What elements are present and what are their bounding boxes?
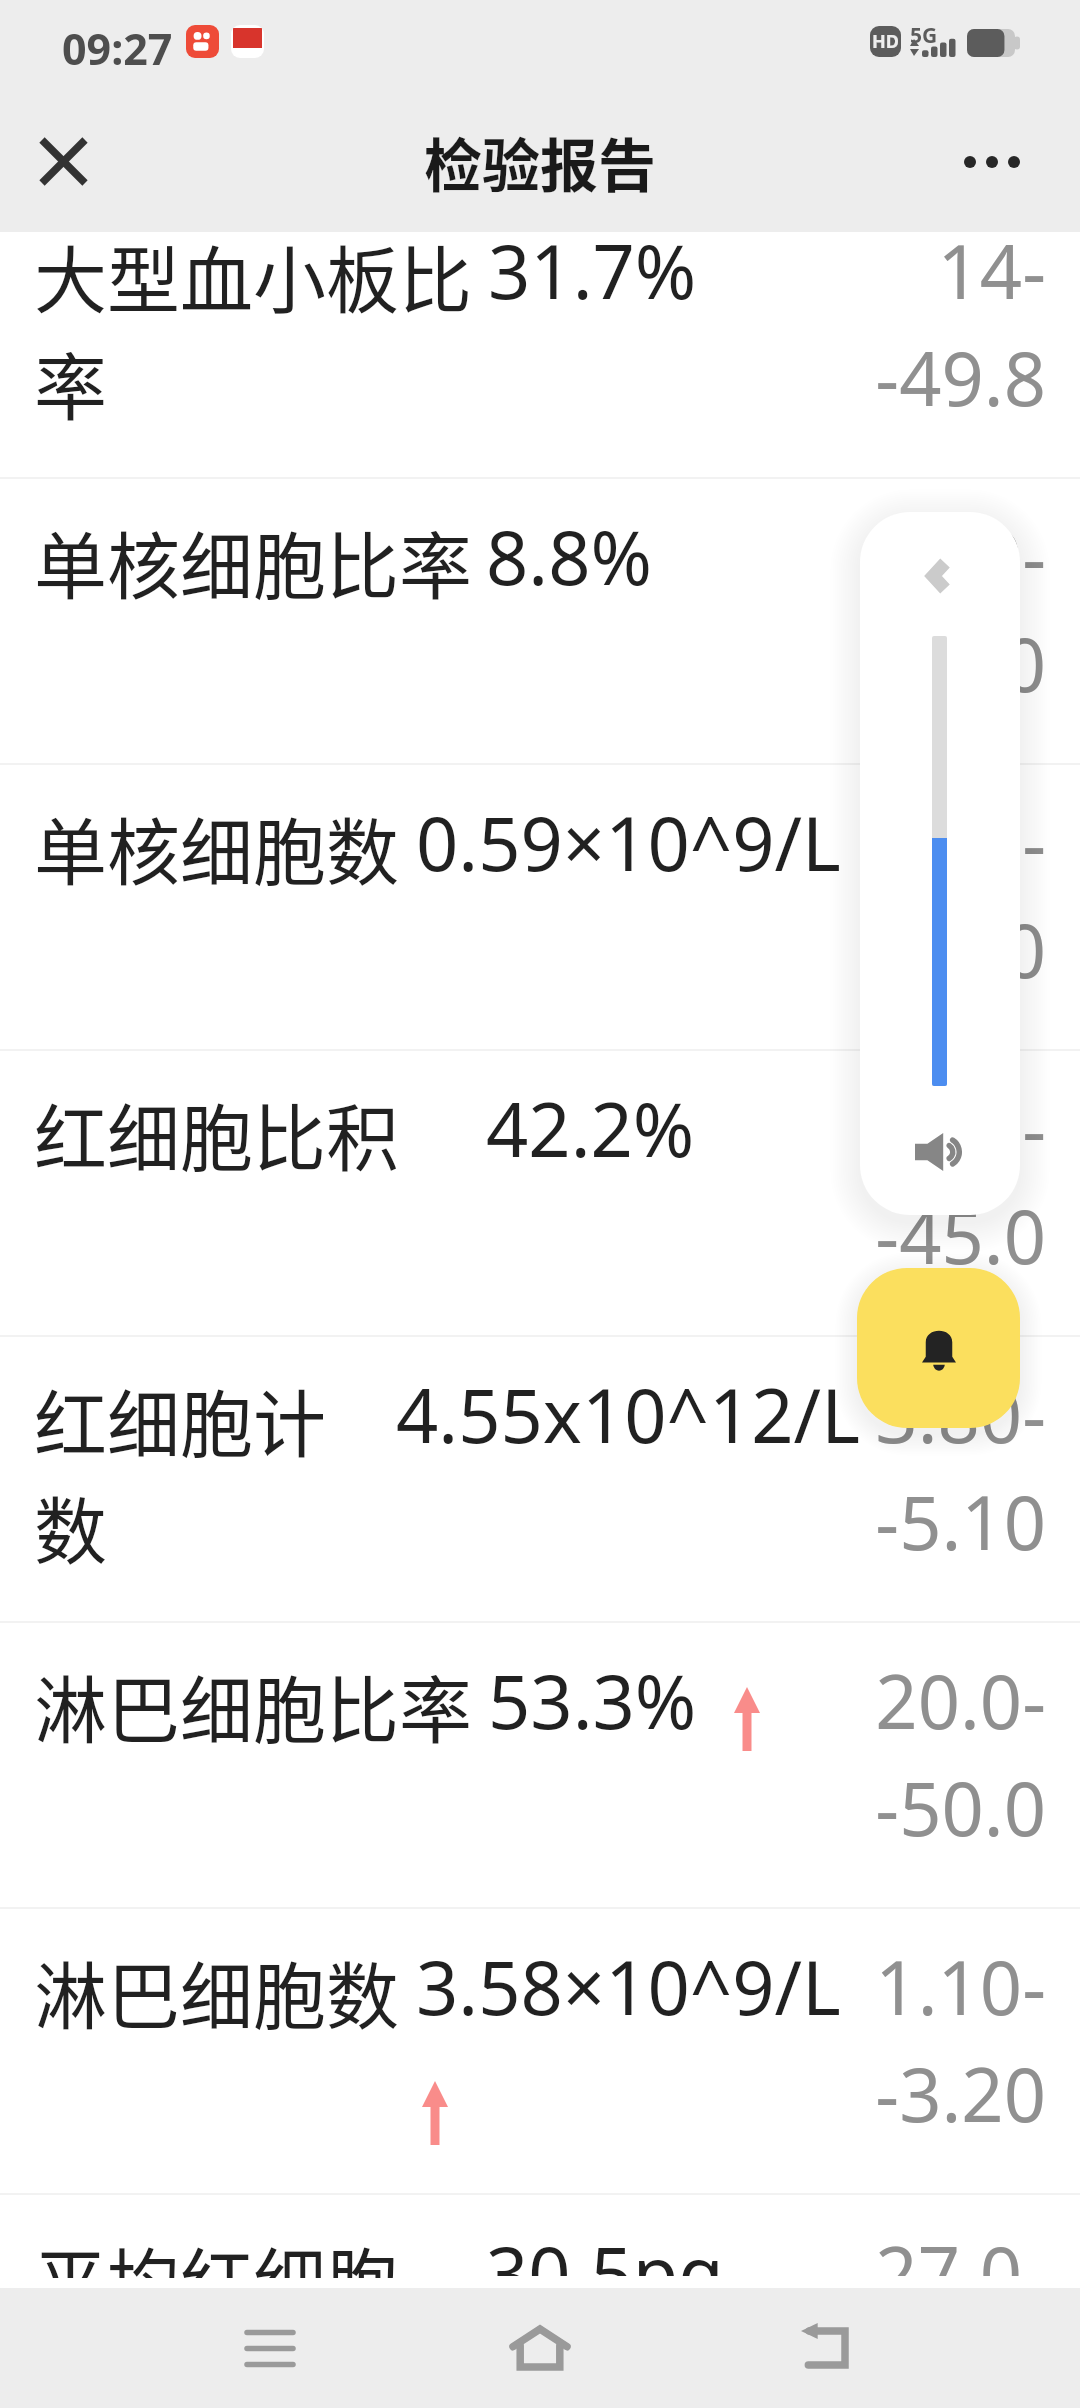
staticText: 30.5pg xyxy=(486,2222,724,2276)
staticText: 0.59×10^9/L xyxy=(416,792,841,893)
staticText: 35.0- -45.0 xyxy=(846,1078,1046,1286)
button[interactable]: Close xyxy=(8,106,118,216)
button[interactable]: 大型血小板比率 xyxy=(0,232,1080,477)
staticText: 09:27 xyxy=(62,19,173,78)
button[interactable]: 淋巴细胞比率 xyxy=(0,1623,1080,1907)
button[interactable]: 平均红细胞血红蛋白量 xyxy=(0,2195,1080,2249)
staticText: 4.55x10^12/L xyxy=(396,1364,860,1465)
button[interactable]: More options xyxy=(932,102,1052,222)
staticText: 31.7% xyxy=(488,232,697,321)
staticText: 8.8% xyxy=(486,506,652,607)
staticText: 3.0- -10.0 xyxy=(846,506,1046,714)
staticText: 检验报告 xyxy=(424,120,657,204)
button[interactable]: Recents xyxy=(190,2288,350,2408)
staticText: 3.80- -5.10 xyxy=(846,1364,1046,1572)
staticText: 53.3% xyxy=(488,1650,697,1751)
staticText: 淋巴细胞数 xyxy=(34,1938,494,2044)
staticText: 0.10- -0.60 xyxy=(846,792,1046,1000)
staticText: 红细胞计数 xyxy=(34,1366,364,1579)
button[interactable]: 单核细胞数 xyxy=(0,765,1080,1049)
button[interactable]: Back xyxy=(745,2288,905,2408)
staticText: 红细胞比积 xyxy=(34,1080,494,1186)
button[interactable]: Notifications xyxy=(857,1268,1020,1428)
staticText: 单核细胞数 xyxy=(34,794,494,900)
staticText: 5G xyxy=(910,21,938,50)
staticText: 27.0- -34.0 xyxy=(846,2222,1046,2276)
staticText: 42.2% xyxy=(486,1078,695,1179)
staticText: 单核细胞比率 xyxy=(34,508,494,614)
staticText: HD xyxy=(872,29,899,54)
staticText: 14- -49.8 xyxy=(846,232,1046,428)
button[interactable]: 红细胞计数 xyxy=(0,1337,1080,1621)
staticText: 淋巴细胞比率 xyxy=(34,1652,494,1758)
staticText: 3.58×10^9/L xyxy=(416,1936,841,2037)
staticText: 20.0- -50.0 xyxy=(846,1650,1046,1858)
button[interactable]: 淋巴细胞数 xyxy=(0,1909,1080,2193)
staticText: 大型血小板比率 xyxy=(34,232,494,435)
button[interactable]: Home xyxy=(460,2288,620,2408)
button[interactable]: 红细胞比积 xyxy=(0,1051,1080,1335)
staticText: 平均红细胞血红蛋白量 xyxy=(34,2224,434,2278)
staticText: 1.10- -3.20 xyxy=(846,1936,1046,2144)
button[interactable]: 单核细胞比率 xyxy=(0,479,1080,763)
